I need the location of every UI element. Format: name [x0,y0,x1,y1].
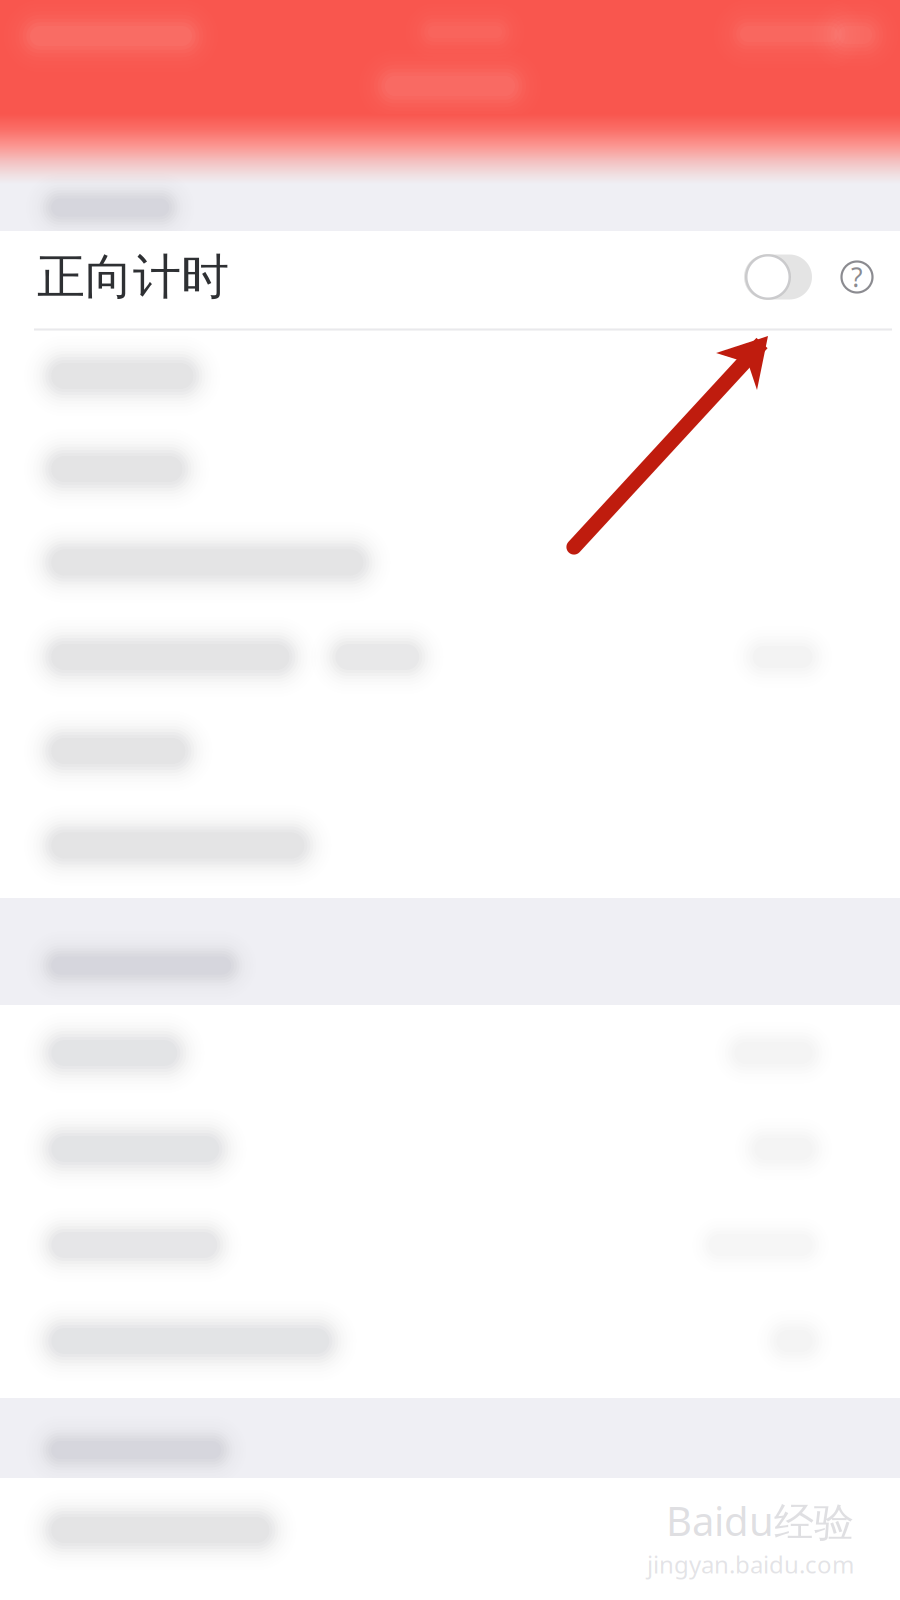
button[interactable] [0,1005,900,1101]
button[interactable] [0,1293,900,1389]
button[interactable] [0,331,900,421]
staticText: ? [851,259,863,295]
button[interactable] [0,517,900,608]
button[interactable] [0,421,900,517]
button[interactable]: 帮助 [828,248,886,306]
staticText: Baidu经验 [666,1494,854,1547]
button[interactable] [0,796,900,895]
button[interactable] [0,1101,900,1197]
button[interactable]: 正向计时 [744,254,828,300]
button[interactable] [0,706,900,796]
button[interactable] [0,1197,900,1293]
button[interactable] [0,1478,900,1582]
button[interactable] [0,608,900,706]
staticText: jingyan.baidu.com [647,1548,854,1580]
staticText: 正向计时 [37,247,229,306]
